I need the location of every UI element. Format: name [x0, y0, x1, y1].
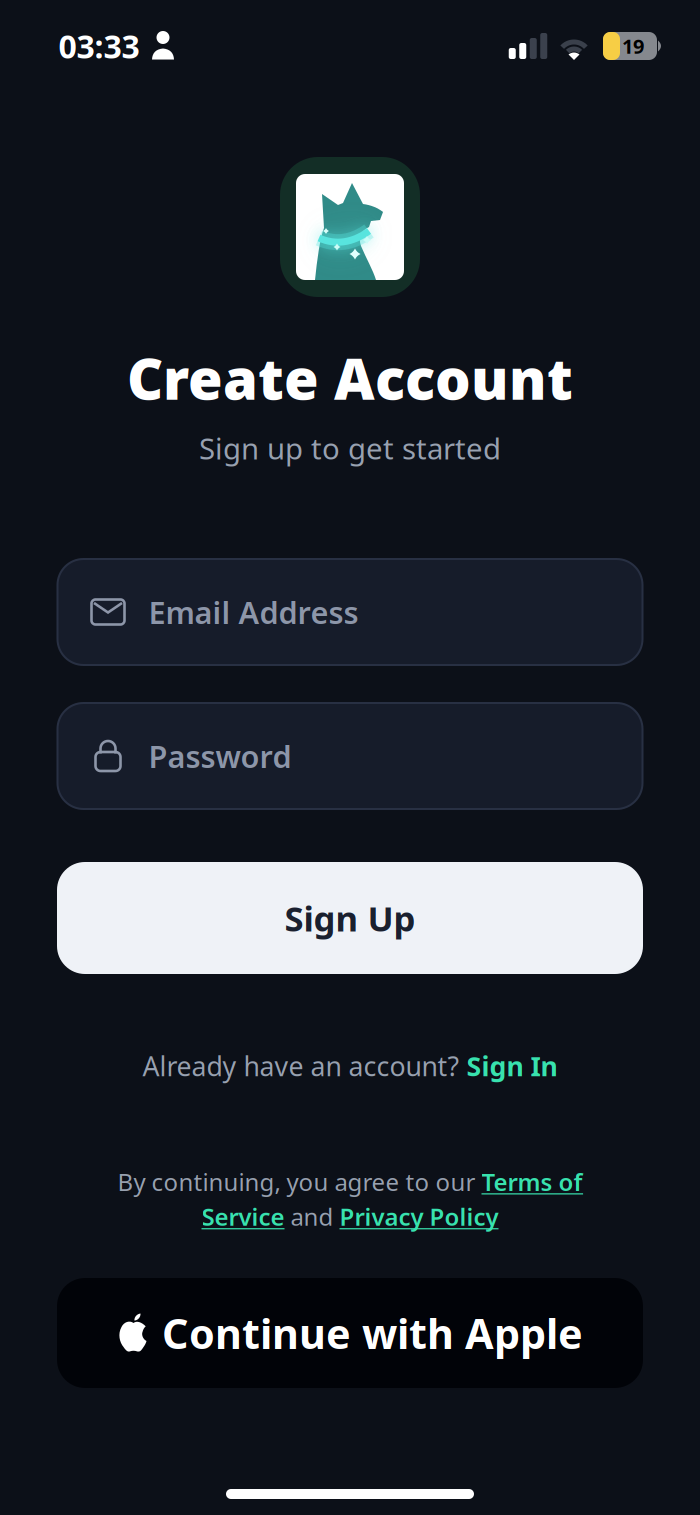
button[interactable]: Sign Up	[57, 862, 643, 974]
button[interactable]: Already have an account?	[142, 1048, 557, 1084]
staticText: Email Address	[148, 592, 358, 632]
staticText: Continue with Apple	[162, 1306, 583, 1360]
staticText: Sign In	[466, 1048, 557, 1084]
button[interactable]: By continuing, you agree to our	[117, 1166, 582, 1232]
staticText: Sign up to get started	[199, 428, 501, 467]
staticText: Create Account	[127, 341, 573, 415]
button[interactable]: Continue with Apple	[57, 1278, 643, 1388]
staticText: Sign Up	[284, 895, 415, 941]
staticText: Terms of	[481, 1166, 582, 1197]
staticText: By continuing, you agree to our	[117, 1166, 475, 1197]
staticText: Privacy Policy	[339, 1200, 498, 1232]
button[interactable]: Email Address	[57, 559, 642, 665]
staticText: and	[290, 1200, 333, 1232]
staticText: Service	[201, 1200, 284, 1232]
button[interactable]: Password	[57, 703, 642, 809]
staticText: 19	[622, 33, 644, 59]
staticText: Already have an account?	[142, 1048, 459, 1084]
staticText: 03:33	[58, 25, 139, 67]
staticText: Password	[148, 736, 291, 776]
